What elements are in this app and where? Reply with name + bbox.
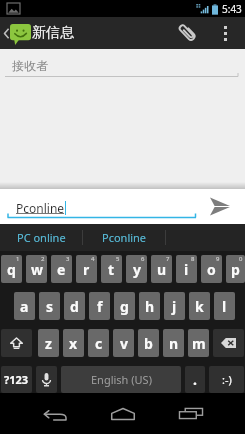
button[interactable]: l [214, 292, 235, 320]
staticText: Pconline [102, 230, 147, 245]
button[interactable]: k [189, 292, 210, 320]
button[interactable]: 接收者 [0, 49, 245, 78]
button[interactable]: . [185, 366, 205, 393]
staticText: English (US) [91, 372, 152, 387]
button[interactable]: s [39, 292, 60, 320]
staticText: 3 [66, 255, 70, 263]
button[interactable]: g [114, 292, 135, 320]
button[interactable]: :-) [209, 366, 244, 393]
staticText: . [193, 370, 197, 389]
staticText: q [7, 260, 16, 279]
button[interactable]: Recent apps [158, 393, 223, 434]
staticText: y [133, 260, 141, 279]
button[interactable]: Attach [168, 17, 206, 49]
button[interactable]: r [76, 255, 97, 283]
button[interactable]: u [151, 255, 172, 283]
staticText: 8 [191, 255, 195, 263]
button[interactable]: n [163, 329, 184, 357]
staticText: 5:43 [222, 2, 242, 16]
button[interactable]: d [64, 292, 85, 320]
button[interactable]: b [138, 329, 159, 357]
button[interactable]: h [139, 292, 160, 320]
staticText: v [120, 334, 128, 353]
button[interactable]: ?123 [1, 366, 32, 393]
staticText: s [46, 297, 54, 316]
staticText: 1 [16, 255, 20, 263]
staticText: 0 [239, 255, 243, 263]
staticText: 4 [91, 255, 95, 263]
staticText: Pconline [16, 200, 65, 216]
button[interactable]: q [1, 255, 22, 283]
staticText: x [69, 334, 78, 353]
button[interactable]: Pconline [83, 224, 165, 251]
button[interactable]: c [88, 329, 109, 357]
staticText: i [184, 260, 189, 279]
staticText: 接收者 [12, 58, 48, 73]
staticText: l [222, 297, 227, 316]
staticText: 5 [116, 255, 120, 263]
staticText: 2 [41, 255, 45, 263]
staticText: t [108, 260, 115, 279]
staticText: g [120, 297, 129, 316]
button[interactable]: i [176, 255, 197, 283]
button[interactable]: o [201, 255, 222, 283]
button[interactable]: PC online [0, 224, 82, 251]
button[interactable]: More options [210, 17, 240, 49]
button[interactable]: e [51, 255, 72, 283]
button[interactable]: Send [195, 189, 245, 224]
staticText: o [207, 260, 216, 279]
staticText: 新信息 [32, 24, 74, 42]
staticText: a [20, 297, 29, 316]
button[interactable]: a [14, 292, 35, 320]
button[interactable]: Delete [213, 329, 244, 357]
button[interactable]: w [26, 255, 47, 283]
staticText: d [70, 297, 79, 316]
staticText: ?123 [4, 372, 29, 387]
staticText: c [95, 334, 103, 353]
button[interactable]: Voice input [36, 366, 57, 393]
staticText: n [169, 334, 179, 353]
staticText: w [31, 260, 43, 279]
button[interactable]: Back [22, 393, 87, 434]
staticText: b [144, 334, 153, 353]
button[interactable]: p [226, 255, 245, 283]
button[interactable]: Navigate up [0, 17, 32, 49]
staticText: 7 [166, 255, 170, 263]
button[interactable]: y [126, 255, 147, 283]
staticText: r [83, 260, 90, 279]
staticText: u [157, 260, 167, 279]
button[interactable]: m [188, 329, 209, 357]
staticText: e [57, 260, 66, 279]
staticText: f [97, 297, 103, 316]
button[interactable]: x [63, 329, 84, 357]
staticText: z [45, 334, 52, 353]
staticText: k [195, 297, 204, 316]
staticText: m [192, 334, 206, 353]
staticText: j [172, 297, 177, 316]
staticText: p [231, 260, 240, 279]
staticText: 6 [141, 255, 145, 263]
button[interactable]: t [101, 255, 122, 283]
button[interactable]: Shift [1, 329, 32, 357]
button[interactable]: f [89, 292, 110, 320]
button[interactable]: j [164, 292, 185, 320]
staticText: h [145, 297, 155, 316]
staticText: PC online [17, 230, 66, 245]
button[interactable]: z [38, 329, 59, 357]
button[interactable]: Home [90, 393, 155, 434]
staticText: :-) [222, 372, 232, 387]
button[interactable]: v [113, 329, 134, 357]
button[interactable]: English (US) [61, 366, 181, 393]
staticText: 9 [216, 255, 220, 263]
